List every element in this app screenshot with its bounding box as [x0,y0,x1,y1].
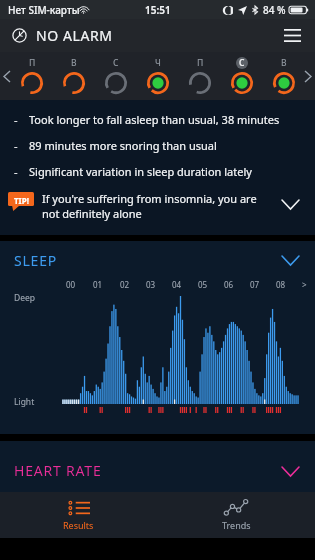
staticText: > [302,279,307,290]
staticText: Deep [14,292,36,304]
staticText: 06 [224,279,250,290]
button[interactable]: С [98,52,133,100]
staticText: 01 [93,279,120,290]
button[interactable]: Ч [140,52,175,100]
staticText: С [113,57,119,69]
staticText: SLEEP [14,251,58,270]
staticText: 00 [66,279,93,290]
other: Expand sleep [277,247,303,273]
staticText: С [239,57,245,69]
staticText: HEART RATE [14,461,102,480]
button[interactable]: HEART RATE [0,441,315,492]
button[interactable]: Trends [157,492,315,538]
staticText: - [14,138,18,153]
staticText: 89 minutes more snoring than usual [29,138,217,153]
button[interactable]: Previous week [0,52,14,100]
button[interactable]: Next week [301,52,315,100]
button[interactable]: В [56,52,91,100]
button[interactable]: С [224,52,259,100]
staticText: П [197,57,204,69]
staticText: Results [63,519,94,531]
staticText: 04 [172,279,198,290]
button[interactable]: Results [0,492,157,538]
button[interactable]: П [182,52,217,100]
staticText: 02 [120,279,146,290]
staticText: If you're suffering from insomnia, you a… [42,191,271,221]
staticText: В [281,57,287,69]
staticText: TIP! [14,195,29,206]
staticText: 84 % [263,3,286,17]
staticText: Significant variation in sleep duration … [29,164,252,179]
staticText: Trends [222,519,251,531]
staticText: Нет SIM-карты [8,3,80,17]
button[interactable]: TIP! [0,191,315,221]
staticText: NO ALARM [36,26,113,45]
staticText: - [14,112,18,127]
button[interactable]: В [266,52,301,100]
staticText: В [71,57,77,69]
button[interactable]: П [14,52,49,100]
staticText: Ч [155,57,161,69]
staticText: 08 [276,279,302,290]
other: Expand tip [277,191,303,217]
button[interactable]: Menu [275,19,309,52]
other: Expand heart rate [277,458,303,484]
staticText: Light [14,396,35,408]
staticText: 15:51 [145,3,171,17]
button[interactable]: SLEEP [0,241,315,279]
staticText: 03 [146,279,172,290]
staticText: - [14,164,18,179]
staticText: 07 [250,279,276,290]
button[interactable]: NO ALARM [12,26,113,45]
staticText: Took longer to fall asleep than usual, 3… [29,112,280,127]
staticText: П [29,57,36,69]
staticText: 05 [198,279,224,290]
